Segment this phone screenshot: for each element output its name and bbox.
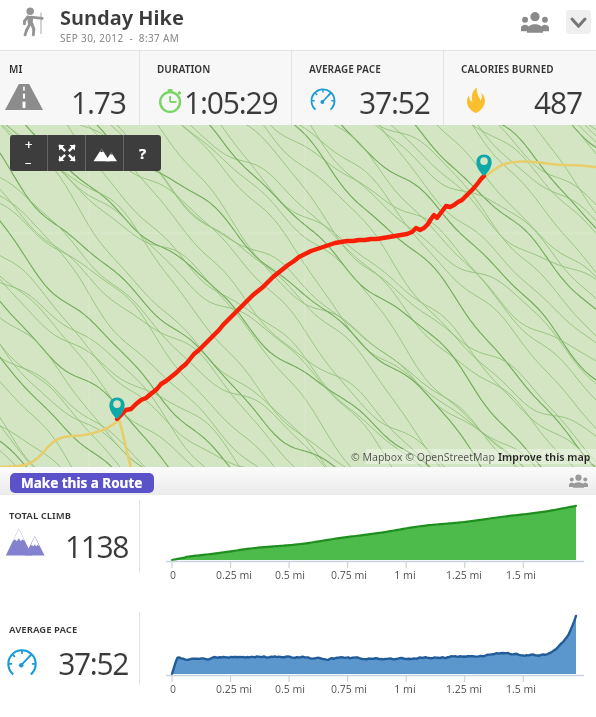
button[interactable]: AVERAGE PACE <box>292 51 443 125</box>
button[interactable]: Help <box>124 135 161 171</box>
staticText: 0.75 mi <box>319 568 379 582</box>
staticText: 0 <box>143 682 203 696</box>
button[interactable]: CALORIES BURNED <box>444 51 595 125</box>
button[interactable]: DURATION <box>140 51 291 125</box>
button[interactable]: TOTAL CLIMB <box>0 495 596 608</box>
staticText: – <box>25 153 32 171</box>
staticText: Improve this map <box>498 450 591 464</box>
button[interactable]: MI <box>0 51 139 125</box>
staticText: AVERAGE PACE <box>9 623 78 636</box>
staticText: 1 mi <box>375 568 435 582</box>
staticText: 1.25 mi <box>434 682 494 696</box>
staticText: AVERAGE PACE <box>309 62 381 76</box>
staticText: 1.5 mi <box>491 682 551 696</box>
staticText: 1:05:29 <box>184 82 278 123</box>
staticText: MI <box>9 62 23 76</box>
staticText: 0.5 mi <box>260 682 320 696</box>
staticText: TOTAL CLIMB <box>9 509 72 522</box>
button[interactable]: More options <box>566 10 591 34</box>
staticText: 487 <box>534 82 582 123</box>
button[interactable]: Zoom out <box>10 153 47 171</box>
staticText: ? <box>139 143 147 163</box>
staticText: 1.5 mi <box>491 568 551 582</box>
button[interactable]: Zoom in <box>10 135 47 153</box>
button[interactable]: AVERAGE PACE <box>0 608 596 717</box>
button[interactable]: Share with friends <box>566 469 590 493</box>
staticText: 1.73 <box>71 82 126 123</box>
staticText: + <box>25 135 33 153</box>
staticText: SEP 30, 2012 - 8:37 AM <box>60 31 180 45</box>
button[interactable]: Terrain <box>86 135 123 171</box>
staticText: DURATION <box>157 62 211 76</box>
staticText: © Mapbox © OpenStreetMap <box>351 450 498 464</box>
staticText: 37:52 <box>51 643 128 684</box>
staticText: 0.5 mi <box>260 568 320 582</box>
staticText: 0.75 mi <box>319 682 379 696</box>
staticText: 1 mi <box>375 682 435 696</box>
staticText: CALORIES BURNED <box>461 62 554 76</box>
staticText: 1.25 mi <box>434 568 494 582</box>
staticText: 0.25 mi <box>204 682 264 696</box>
staticText: 37:52 <box>359 82 430 123</box>
staticText: Make this a Route <box>21 474 143 492</box>
staticText: 0.25 mi <box>204 568 264 582</box>
staticText: Sunday Hike <box>60 4 184 31</box>
button[interactable]: Fullscreen <box>48 135 85 171</box>
staticText: 1138 <box>51 526 128 567</box>
button[interactable]: Make this a Route <box>10 473 154 493</box>
button[interactable]: Friends <box>515 6 555 38</box>
staticText: 0 <box>143 568 203 582</box>
